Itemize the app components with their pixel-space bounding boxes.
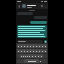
button[interactable] (34, 54, 37, 58)
button[interactable] (22, 54, 24, 58)
button[interactable] (27, 5, 40, 8)
button[interactable] (34, 16, 47, 19)
button[interactable] (23, 44, 26, 48)
button[interactable] (26, 44, 29, 48)
button[interactable] (20, 54, 22, 58)
button[interactable] (26, 54, 28, 58)
button[interactable] (44, 49, 47, 53)
button[interactable] (32, 49, 35, 53)
button[interactable] (23, 49, 26, 53)
button[interactable] (29, 49, 32, 53)
button[interactable] (17, 12, 33, 15)
button[interactable] (32, 44, 35, 48)
button[interactable]: More options (44, 5, 47, 8)
button[interactable] (26, 49, 29, 53)
button[interactable] (20, 44, 23, 48)
button[interactable] (28, 54, 31, 58)
button[interactable] (38, 49, 41, 53)
button[interactable] (37, 54, 40, 58)
button[interactable]: Send (44, 40, 47, 43)
button[interactable]: Space (24, 59, 39, 63)
button[interactable] (30, 21, 47, 24)
button[interactable] (35, 49, 38, 53)
button[interactable] (24, 54, 26, 58)
button[interactable]: Contact avatar (22, 4, 26, 8)
button[interactable] (38, 44, 41, 48)
button[interactable] (41, 49, 44, 53)
button[interactable] (17, 44, 20, 48)
button[interactable] (35, 44, 38, 48)
button[interactable] (17, 25, 47, 38)
button[interactable] (41, 44, 44, 48)
button[interactable] (17, 49, 20, 53)
button[interactable] (39, 59, 42, 63)
button[interactable] (31, 54, 34, 58)
button[interactable] (44, 44, 47, 48)
button[interactable] (20, 49, 23, 53)
button[interactable]: Call (40, 4, 44, 8)
button[interactable] (17, 40, 43, 43)
button[interactable] (40, 54, 43, 58)
button[interactable]: Back (17, 4, 21, 8)
button[interactable] (29, 44, 32, 48)
